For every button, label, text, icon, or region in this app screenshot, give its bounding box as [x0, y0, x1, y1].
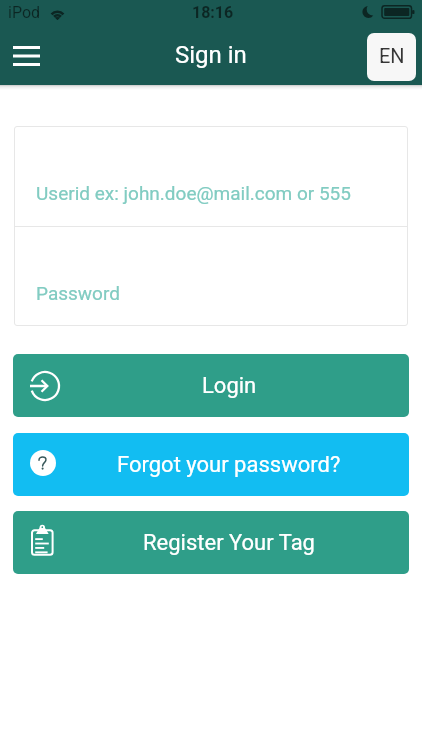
staticText: Password — [36, 282, 120, 304]
button[interactable]: Userid ex: john.doe@mail.com or 55512345… — [14, 126, 408, 226]
staticText: iPod — [8, 3, 41, 22]
staticText: Forgot your password? — [117, 452, 341, 478]
staticText: Userid ex: john.doe@mail.com or 55512345… — [36, 182, 352, 204]
button[interactable]: Password — [14, 226, 408, 326]
staticText: Sign in — [175, 41, 247, 69]
button[interactable]: EN — [367, 33, 416, 81]
button[interactable]: Menu — [3, 32, 50, 79]
staticText: EN — [379, 44, 405, 67]
staticText: Register Your Tag — [143, 530, 315, 556]
button[interactable]: Forgot your password? — [13, 433, 409, 496]
button[interactable]: Register Your Tag — [13, 511, 409, 574]
button[interactable]: Login — [13, 354, 409, 417]
staticText: Login — [202, 373, 257, 399]
staticText: 18:16 — [192, 3, 234, 22]
